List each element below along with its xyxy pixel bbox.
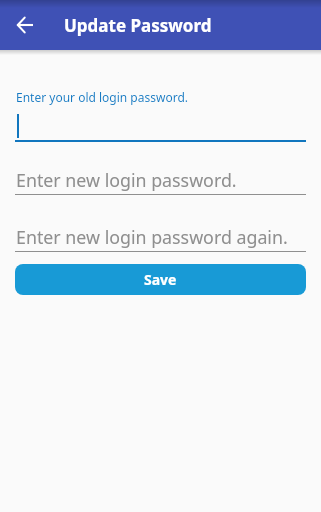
button[interactable] [0, 0, 50, 50]
staticText: Enter new login password. [16, 168, 237, 192]
button[interactable] [15, 162, 306, 196]
button[interactable] [15, 219, 306, 253]
button[interactable]: Save [15, 264, 306, 295]
button[interactable] [15, 104, 306, 142]
staticText: Save [144, 270, 177, 289]
staticText: Enter new login password again. [16, 225, 288, 249]
staticText: Update Password [64, 14, 212, 37]
staticText: Enter your old login password. [16, 89, 188, 105]
